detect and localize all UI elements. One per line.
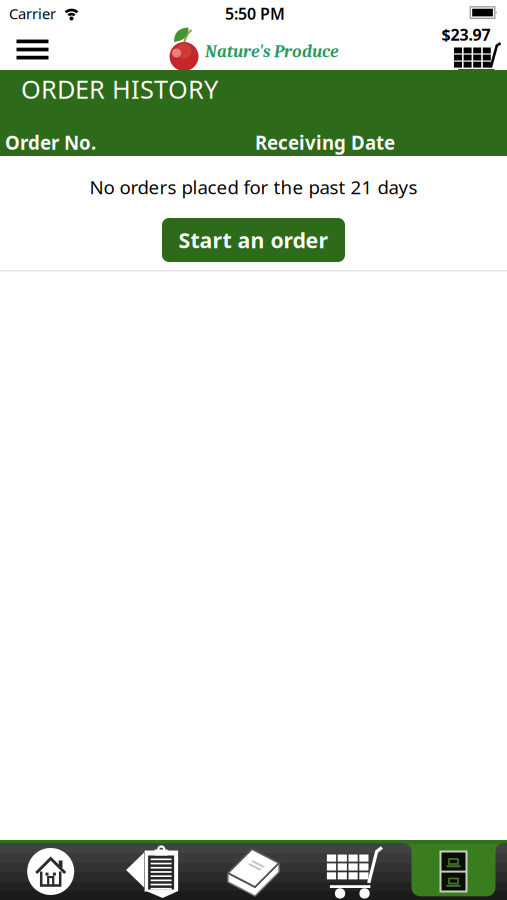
- staticText: No orders placed for the past 21 days: [89, 175, 417, 199]
- staticText: $23.97: [441, 24, 490, 45]
- staticText: ORDER HISTORY: [21, 72, 218, 106]
- staticText: Order No.: [5, 130, 96, 155]
- button[interactable]: [102, 844, 203, 900]
- button[interactable]: [0, 843, 101, 900]
- button[interactable]: [203, 844, 304, 900]
- button[interactable]: [403, 843, 504, 900]
- staticText: Carrier: [9, 4, 56, 23]
- button[interactable]: [304, 843, 405, 900]
- staticText: Receiving Date: [255, 130, 395, 155]
- staticText: Nature's Produce: [205, 41, 338, 61]
- button[interactable]: Start an order: [162, 218, 345, 262]
- staticText: 5:50 PM: [225, 3, 285, 24]
- button[interactable]: [16, 39, 48, 59]
- staticText: Start an order: [178, 226, 328, 254]
- button[interactable]: [454, 42, 501, 72]
